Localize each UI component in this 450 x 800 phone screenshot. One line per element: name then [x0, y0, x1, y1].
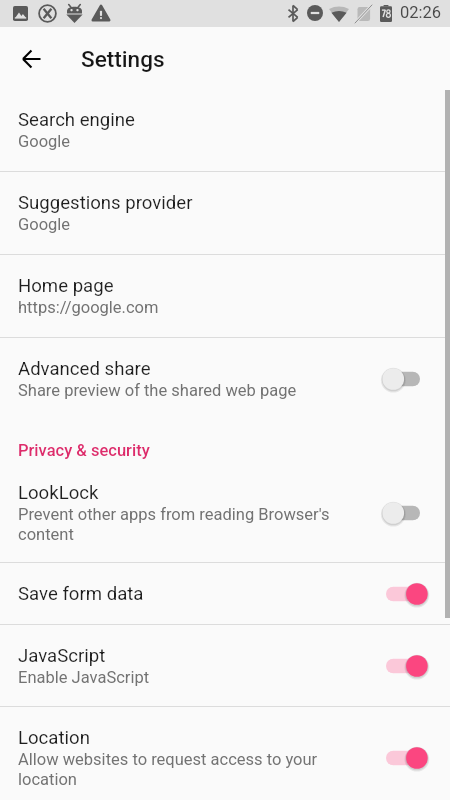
button[interactable]: Location	[0, 707, 450, 800]
staticText: JavaScript	[18, 645, 106, 667]
staticText: Allow websites to request access to your…	[18, 750, 338, 789]
button[interactable]: Back	[11, 38, 52, 79]
button[interactable]: LookLock	[0, 464, 450, 562]
button[interactable]: Search engine	[0, 89, 450, 171]
staticText: Search engine	[18, 109, 135, 131]
staticText: Settings	[81, 46, 165, 72]
staticText: Google	[18, 132, 71, 151]
staticText: Share preview of the shared web page	[18, 381, 297, 400]
staticText: Prevent other apps from reading Browser'…	[18, 505, 338, 544]
button[interactable]: Home page	[0, 255, 450, 337]
button[interactable]: Toggle on	[390, 738, 450, 778]
staticText: https://google.com	[18, 298, 159, 317]
button[interactable]: Toggle on	[390, 646, 450, 686]
button[interactable]: Suggestions provider	[0, 172, 450, 254]
staticText: Google	[18, 215, 71, 234]
button[interactable]: Toggle on	[390, 574, 450, 614]
button[interactable]: Save form data	[0, 563, 450, 624]
staticText: LookLock	[18, 482, 99, 504]
button[interactable]: Toggle off	[390, 359, 450, 399]
button[interactable]: Advanced share	[0, 338, 450, 420]
staticText: Advanced share	[18, 358, 151, 380]
button[interactable]: JavaScript	[0, 625, 450, 706]
staticText: Home page	[18, 275, 114, 297]
staticText: Save form data	[18, 583, 144, 605]
staticText: Suggestions provider	[18, 192, 193, 214]
staticText: Enable JavaScript	[18, 668, 150, 687]
button[interactable]: Toggle off	[390, 493, 450, 533]
staticText: 02:26	[400, 3, 442, 22]
staticText: Location	[18, 727, 90, 749]
staticText: Privacy & security	[18, 441, 150, 460]
